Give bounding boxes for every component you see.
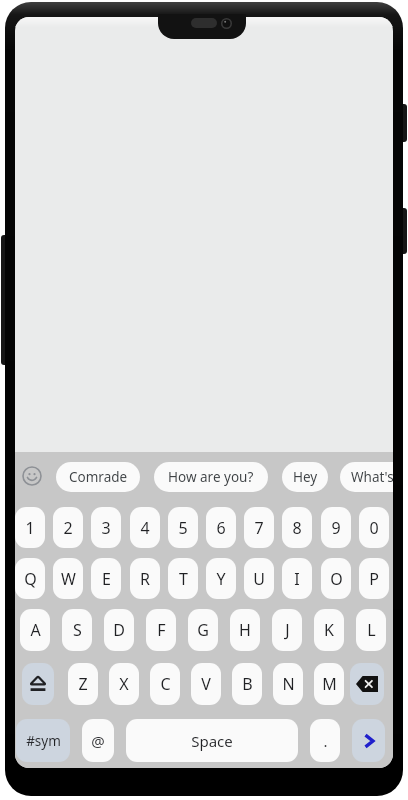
staticText: Q [24,568,37,590]
button[interactable]: B [232,663,262,705]
button[interactable]: M [314,663,344,705]
staticText: X [119,673,129,695]
button[interactable]: @ [82,719,114,762]
staticText: 3 [101,517,111,539]
button[interactable]: A [20,609,50,651]
staticText: L [367,619,376,641]
button[interactable]: F [146,609,176,651]
staticText: 0 [369,517,379,539]
button[interactable]: 8 [282,507,312,548]
button[interactable]: J [272,609,302,651]
staticText: U [253,568,265,590]
button[interactable] [22,663,54,705]
staticText: J [285,619,290,641]
button[interactable]: I [282,558,312,599]
staticText: C [160,673,171,695]
button[interactable]: Y [206,558,236,599]
staticText: H [239,619,251,641]
staticText: 8 [292,517,302,539]
button[interactable]: V [191,663,221,705]
staticText: 7 [254,517,264,539]
button[interactable] [350,663,384,705]
button[interactable] [15,461,49,491]
staticText: . [323,731,328,751]
button[interactable]: 2 [53,507,83,548]
button[interactable]: H [230,609,260,651]
staticText: A [30,619,41,641]
button[interactable]: 0 [359,507,389,548]
staticText: 6 [216,517,226,539]
staticText: Y [216,568,226,590]
staticText: #sym [26,732,61,750]
staticText: 9 [331,517,341,539]
button[interactable]: Q [15,558,45,599]
staticText: O [330,568,343,590]
staticText: K [324,619,334,641]
staticText: Space [191,731,233,751]
button[interactable]: 1 [15,507,45,548]
staticText: @ [91,731,105,751]
staticText: Hey [293,468,318,486]
button[interactable]: Space [126,719,298,762]
button[interactable]: How are you? [154,462,268,492]
staticText: 1 [25,517,35,539]
staticText: 2 [63,517,73,539]
staticText: D [113,619,125,641]
button[interactable]: D [104,609,134,651]
button[interactable]: R [130,558,160,599]
staticText: S [73,619,82,641]
button[interactable]: U [244,558,274,599]
staticText: 4 [140,517,150,539]
staticText: M [322,673,337,695]
button[interactable]: 6 [206,507,236,548]
staticText: What's up [351,468,393,486]
staticText: I [294,568,300,590]
button[interactable]: T [168,558,198,599]
button[interactable]: K [314,609,344,651]
staticText: F [157,619,166,641]
button[interactable]: O [321,558,351,599]
staticText: W [61,568,76,590]
button[interactable]: S [62,609,92,651]
button[interactable]: 5 [168,507,198,548]
button[interactable]: . [310,719,340,762]
button[interactable]: N [273,663,303,705]
staticText: N [282,673,295,695]
button[interactable]: G [188,609,218,651]
staticText: B [242,673,253,695]
button[interactable]: 3 [91,507,121,548]
staticText: G [197,619,209,641]
button[interactable]: C [150,663,180,705]
button[interactable]: #sym [16,719,70,762]
button[interactable]: X [109,663,139,705]
button[interactable]: What's up [340,462,393,492]
staticText: E [102,568,111,590]
button[interactable]: 9 [321,507,351,548]
staticText: V [201,673,211,695]
button[interactable]: 7 [244,507,274,548]
button[interactable] [352,719,385,762]
button[interactable]: Comrade [56,462,140,492]
staticText: Comrade [69,468,128,486]
button[interactable]: L [356,609,386,651]
button[interactable]: Z [68,663,98,705]
staticText: P [369,568,379,590]
button[interactable]: E [91,558,121,599]
staticText: T [179,568,188,590]
button[interactable]: 4 [130,507,160,548]
button[interactable]: P [359,558,389,599]
staticText: How are you? [168,468,254,486]
button[interactable]: Hey [282,462,328,492]
button[interactable]: W [53,558,83,599]
staticText: Z [78,673,88,695]
staticText: 5 [178,517,188,539]
staticText: R [140,568,150,590]
